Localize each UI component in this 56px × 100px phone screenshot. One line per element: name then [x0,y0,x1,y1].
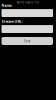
staticText: Stream URL: [1,19,22,24]
staticText: Save [24,39,31,43]
staticText: World Radio Pro [16,1,39,4]
staticText: Name: [1,3,12,8]
button[interactable]: Save [1,37,53,45]
